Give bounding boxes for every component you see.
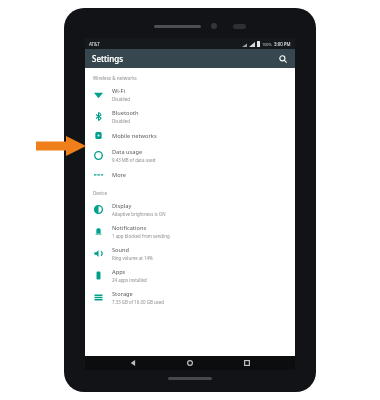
staticText: Notifications — [112, 224, 147, 232]
staticText: Sound — [112, 246, 129, 254]
button[interactable]: Storage — [85, 286, 295, 308]
staticText: Apps — [112, 268, 126, 276]
staticText: Wi-Fi — [112, 87, 126, 95]
staticText: Disabled — [112, 96, 130, 102]
staticText: Ring volume at 14% — [112, 255, 153, 261]
button[interactable]: Home — [181, 356, 199, 370]
staticText: Data usage — [112, 148, 143, 156]
button[interactable]: Recent apps — [238, 356, 256, 370]
button[interactable]: Back — [124, 356, 142, 370]
staticText: Mobile networks — [112, 132, 157, 140]
button[interactable]: Notifications — [85, 220, 295, 242]
staticText: 100% — [262, 42, 272, 47]
staticText: Storage — [112, 290, 133, 298]
staticText: Device — [93, 190, 108, 196]
staticText: 3:00 PM — [274, 41, 291, 47]
button[interactable]: Wi-Fi — [85, 83, 295, 105]
staticText: Disabled — [112, 118, 130, 124]
button[interactable]: Apps — [85, 264, 295, 286]
staticText: 9.43 MB of data used — [112, 157, 156, 163]
button[interactable]: Display — [85, 198, 295, 220]
staticText: 24 apps installed — [112, 277, 147, 283]
button[interactable]: More — [85, 166, 295, 183]
staticText: Display — [112, 202, 132, 210]
staticText: Bluetooth — [112, 109, 139, 117]
staticText: 1 app blocked from sending — [112, 233, 170, 239]
button[interactable]: Bluetooth — [85, 105, 295, 127]
staticText: Wireless & networks — [93, 75, 137, 81]
button[interactable]: Mobile networks — [85, 127, 295, 144]
staticText: Settings — [92, 53, 124, 64]
button[interactable]: Search — [276, 52, 290, 66]
staticText: Adaptive brightness is ON — [112, 211, 166, 217]
staticText: More — [112, 171, 127, 179]
staticText: AT&T — [89, 41, 100, 47]
staticText: 7.33 GB of 16.00 GB used — [112, 299, 164, 305]
button[interactable]: Sound — [85, 242, 295, 264]
button[interactable]: Data usage — [85, 144, 295, 166]
